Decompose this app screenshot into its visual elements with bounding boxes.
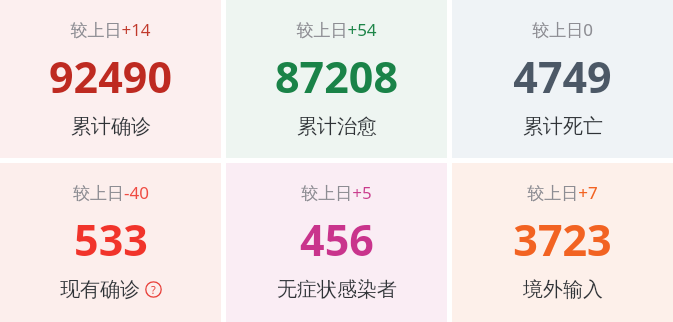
- staticText: 较上日+54: [296, 18, 377, 41]
- button[interactable]: 较上日+14: [0, 0, 221, 158]
- staticText: 较上日+5: [301, 181, 372, 204]
- staticText: 现有确诊: [60, 277, 140, 302]
- button[interactable]: 较上日+54: [226, 0, 447, 158]
- staticText: 92490: [49, 47, 172, 106]
- staticText: 533: [74, 210, 148, 269]
- button[interactable]: 说明: [145, 281, 162, 298]
- staticText: 较上日+7: [527, 181, 598, 204]
- button[interactable]: 较上日+5: [226, 163, 447, 322]
- button[interactable]: 较上日0: [452, 0, 673, 158]
- staticText: 累计治愈: [297, 114, 377, 139]
- staticText: 较上日0: [532, 18, 593, 41]
- staticText: 3723: [513, 210, 612, 269]
- staticText: ?: [151, 282, 156, 297]
- staticText: 较上日+14: [70, 18, 151, 41]
- staticText: 无症状感染者: [277, 277, 397, 302]
- button[interactable]: 较上日-40: [0, 163, 221, 322]
- staticText: 4749: [513, 47, 612, 106]
- staticText: 较上日-40: [73, 181, 149, 204]
- staticText: 87208: [275, 47, 398, 106]
- staticText: 累计死亡: [523, 114, 603, 139]
- staticText: 境外输入: [523, 277, 603, 302]
- staticText: 456: [300, 210, 374, 269]
- staticText: 累计确诊: [71, 114, 151, 139]
- button[interactable]: 较上日+7: [452, 163, 673, 322]
